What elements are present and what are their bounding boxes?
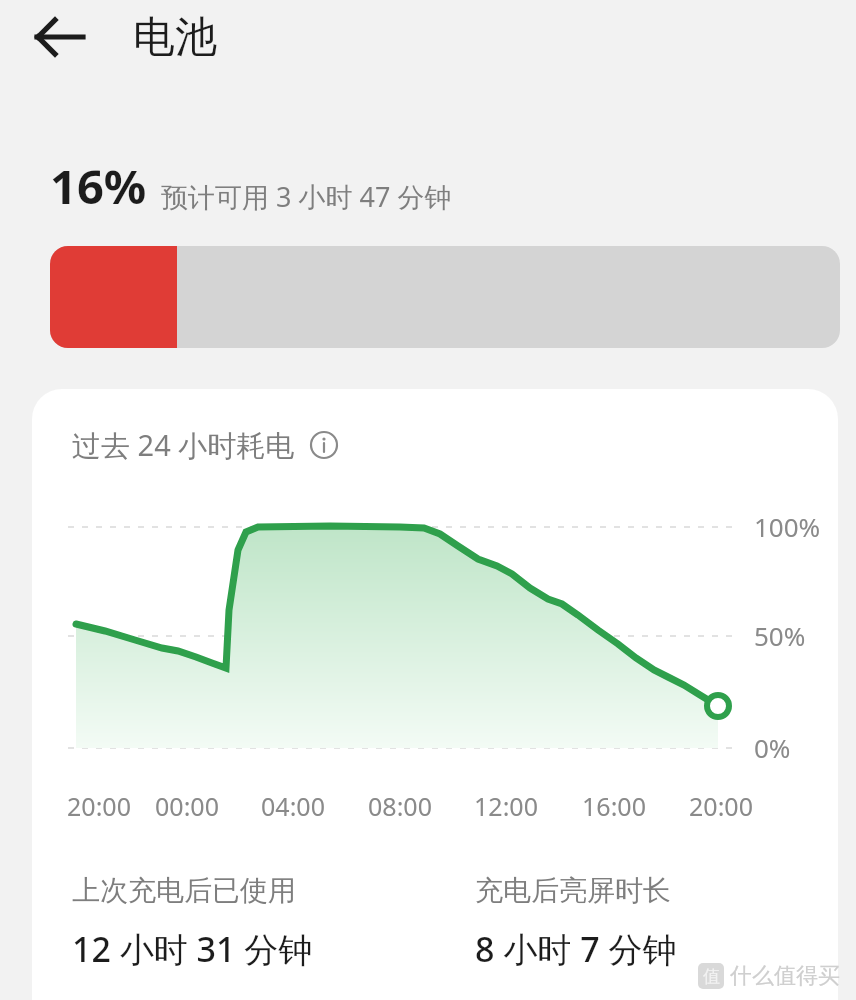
staticText: 12:00 [468, 789, 544, 823]
staticText: 0% [754, 730, 791, 765]
staticText: 电池 [133, 11, 217, 64]
staticText: 值 [703, 966, 720, 987]
staticText: 20:00 [683, 789, 759, 823]
staticText: 12 小时 31 分钟 [72, 926, 313, 972]
staticText: 什么值得买 [730, 962, 840, 990]
staticText: 16% [50, 154, 147, 218]
button[interactable]: 充电后亮屏时长 [475, 873, 835, 972]
staticText: 16:00 [576, 789, 652, 823]
staticText: 04:00 [255, 789, 331, 823]
staticText: 100% [754, 509, 821, 544]
staticText: 50% [754, 618, 806, 653]
staticText: 8 小时 7 分钟 [475, 926, 677, 972]
staticText: 过去 24 小时耗电 [72, 425, 295, 465]
staticText: 上次充电后已使用 [72, 873, 296, 908]
staticText: 20:00 [61, 789, 137, 823]
staticText: 充电后亮屏时长 [475, 873, 671, 908]
staticText: 预计可用 3 小时 47 分钟 [161, 178, 452, 215]
button[interactable]: 过去 24 小时耗电 [72, 425, 339, 465]
button[interactable]: Back [26, 3, 94, 71]
other: Info [309, 430, 339, 460]
staticText: 08:00 [362, 789, 438, 823]
button[interactable]: 上次充电后已使用 [72, 873, 472, 972]
staticText: 00:00 [149, 789, 225, 823]
